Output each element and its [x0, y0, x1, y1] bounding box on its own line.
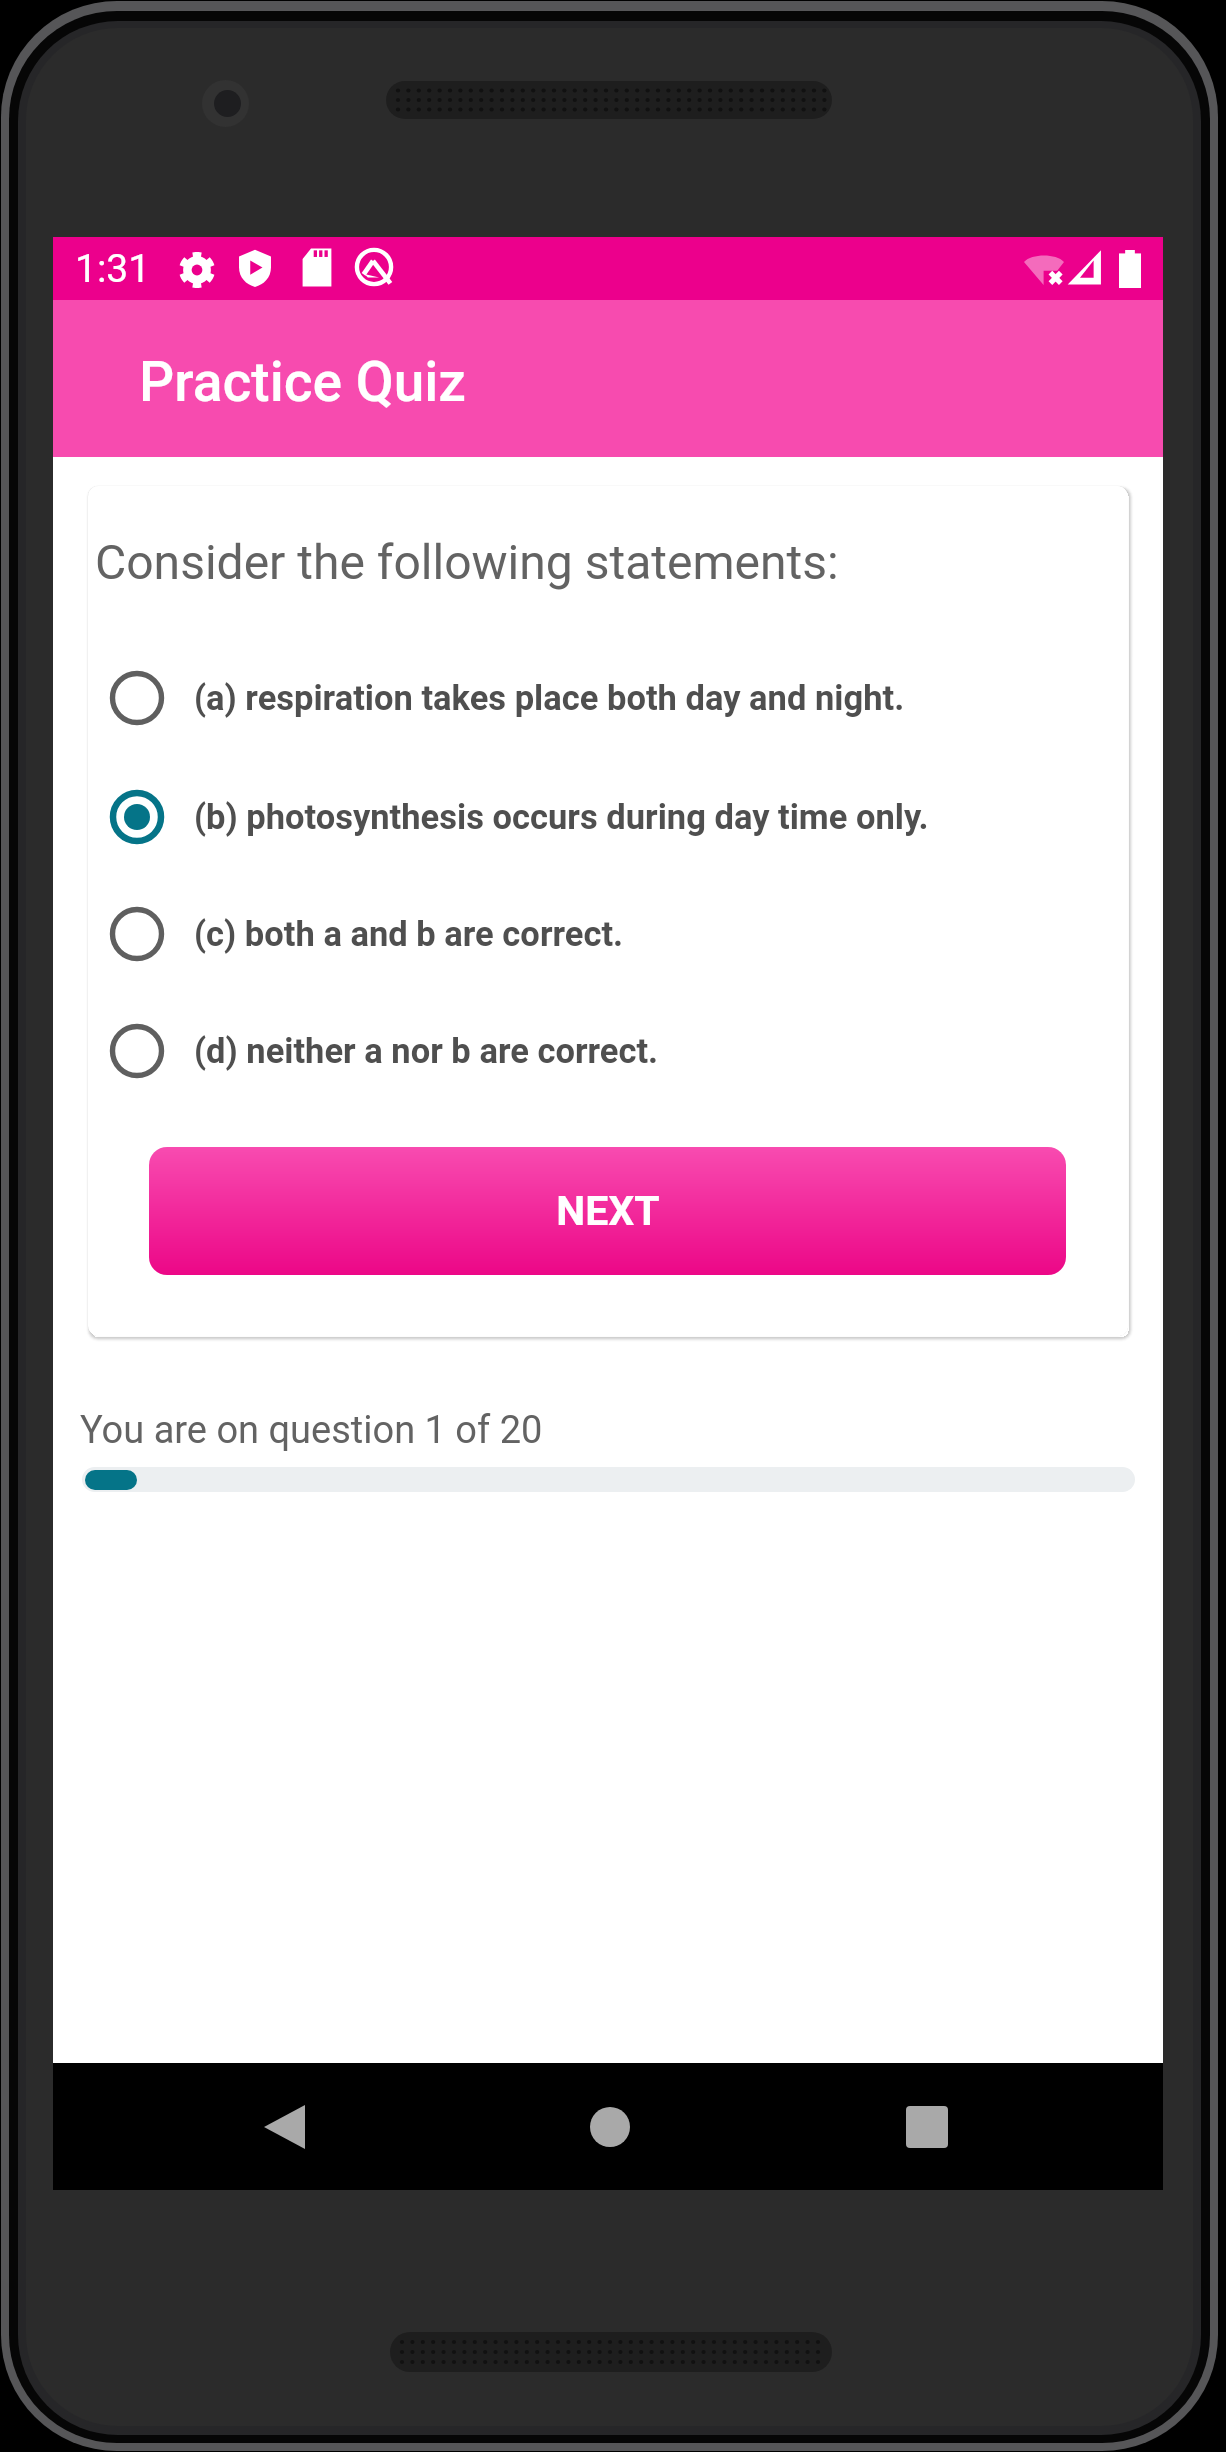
button[interactable]: (c) both a and b are correct. — [88, 890, 1128, 978]
staticText: NEXT — [556, 1187, 660, 1235]
button[interactable]: (a) respiration takes place both day and… — [88, 654, 1128, 742]
button[interactable]: Back — [236, 2079, 332, 2175]
staticText: Practice Quiz — [139, 350, 467, 414]
button[interactable]: Recent apps — [879, 2079, 975, 2175]
button[interactable]: (b) photosynthesis occurs during day tim… — [88, 773, 1128, 861]
button[interactable]: Home — [562, 2079, 658, 2175]
staticText: (a) respiration takes place both day and… — [194, 678, 905, 718]
button[interactable]: NEXT — [149, 1147, 1066, 1275]
staticText: (d) neither a nor b are correct. — [194, 1031, 659, 1071]
staticText: You are on question 1 of 20 — [80, 1408, 543, 1453]
staticText: Consider the following statements: — [95, 534, 839, 590]
staticText: 1:31 — [75, 246, 151, 292]
staticText: (b) photosynthesis occurs during day tim… — [194, 797, 929, 837]
staticText: (c) both a and b are correct. — [194, 914, 624, 954]
button[interactable]: (d) neither a nor b are correct. — [88, 1007, 1128, 1095]
